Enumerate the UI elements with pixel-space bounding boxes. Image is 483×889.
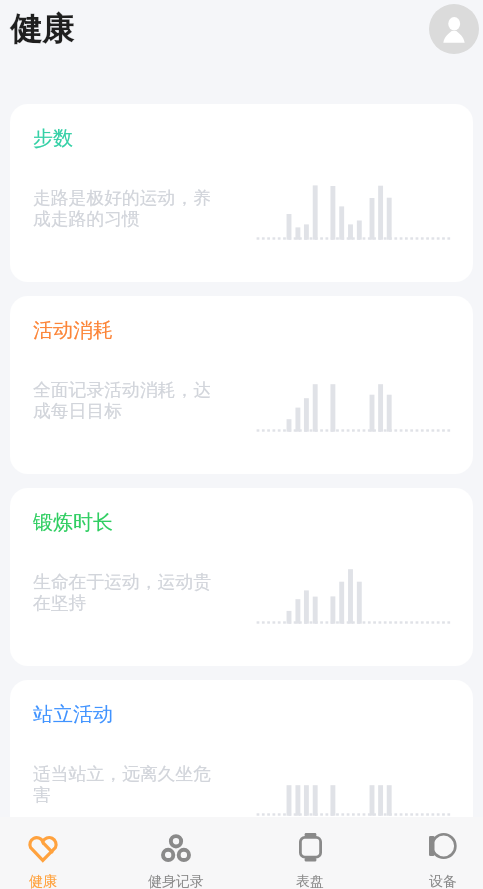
staticText: 活动消耗 bbox=[33, 318, 113, 343]
button[interactable]: 活动消耗 bbox=[10, 296, 473, 474]
staticText: 表盘 bbox=[273, 873, 347, 889]
staticText: 生命在于运动，运动贵在坚持 bbox=[33, 571, 215, 614]
button[interactable]: 锻炼时长 bbox=[10, 488, 473, 666]
button[interactable]: 站立活动 bbox=[10, 680, 473, 858]
button[interactable]: Profile bbox=[429, 4, 479, 54]
staticText: 健康 bbox=[10, 9, 74, 49]
staticText: 锻炼时长 bbox=[33, 510, 113, 535]
staticText: 全面记录活动消耗，达成每日目标 bbox=[33, 379, 215, 422]
button[interactable]: 健康 bbox=[6, 817, 80, 889]
staticText: 走路是极好的运动，养成走路的习惯 bbox=[33, 187, 215, 230]
staticText: 站立活动 bbox=[33, 702, 113, 727]
button[interactable]: 步数 bbox=[10, 104, 473, 282]
staticText: 健身记录 bbox=[139, 873, 213, 889]
button[interactable]: 表盘 bbox=[273, 817, 347, 889]
staticText: 设备 bbox=[406, 873, 480, 889]
staticText: 适当站立，远离久坐危害 bbox=[33, 763, 215, 806]
staticText: 健康 bbox=[6, 873, 80, 889]
staticText: 步数 bbox=[33, 126, 73, 151]
button[interactable]: 设备 bbox=[406, 817, 480, 889]
button[interactable]: 健身记录 bbox=[139, 817, 213, 889]
